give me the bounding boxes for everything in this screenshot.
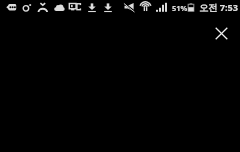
staticText: 오전 7:53 (199, 1, 239, 14)
staticText: 51% (172, 3, 188, 13)
button[interactable]: Close (207, 19, 235, 47)
button[interactable]: Media viewer (0, 0, 240, 152)
